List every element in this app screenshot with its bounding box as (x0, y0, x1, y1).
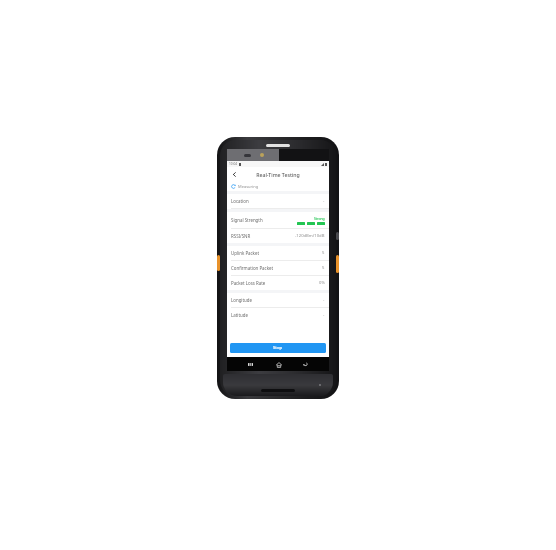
button[interactable]: RSSI/SNR (227, 229, 329, 243)
button[interactable]: Uplink Packet (227, 246, 329, 260)
button[interactable]: Signal Strength (227, 212, 329, 228)
button[interactable]: Latitude (227, 308, 329, 322)
staticText: -120dBm/10dB (295, 233, 325, 239)
staticText: 5 (322, 250, 325, 256)
staticText: Location (231, 198, 249, 204)
staticText: Latitude (231, 312, 248, 318)
button[interactable]: Back (301, 360, 310, 369)
button[interactable]: Back (229, 169, 239, 179)
staticText: Confirmation Packet (231, 265, 274, 271)
button[interactable]: Stop (230, 343, 326, 353)
staticText: - (323, 297, 325, 303)
button[interactable]: Home (274, 360, 283, 369)
staticText: Longitude (231, 297, 252, 303)
staticText: 10:04 (229, 162, 238, 166)
staticText: Stop (273, 345, 283, 351)
staticText: Measuring (238, 184, 259, 189)
button[interactable]: Packet Loss Rate (227, 276, 329, 290)
staticText: - (323, 198, 325, 204)
staticText: - (323, 312, 325, 318)
button[interactable]: Recents (246, 360, 255, 369)
staticText: Packet Loss Rate (231, 280, 266, 286)
staticText: RSSI/SNR (231, 233, 251, 239)
button[interactable]: Confirmation Packet (227, 261, 329, 275)
staticText: 0% (319, 280, 325, 286)
button[interactable]: Longitude (227, 293, 329, 307)
staticText: Signal Strength (231, 217, 263, 223)
staticText: Strong (314, 216, 325, 221)
staticText: 5 (322, 265, 325, 271)
button[interactable]: Location (227, 194, 329, 208)
staticText: Uplink Packet (231, 250, 260, 256)
staticText: Real-Time Testing (256, 171, 300, 178)
